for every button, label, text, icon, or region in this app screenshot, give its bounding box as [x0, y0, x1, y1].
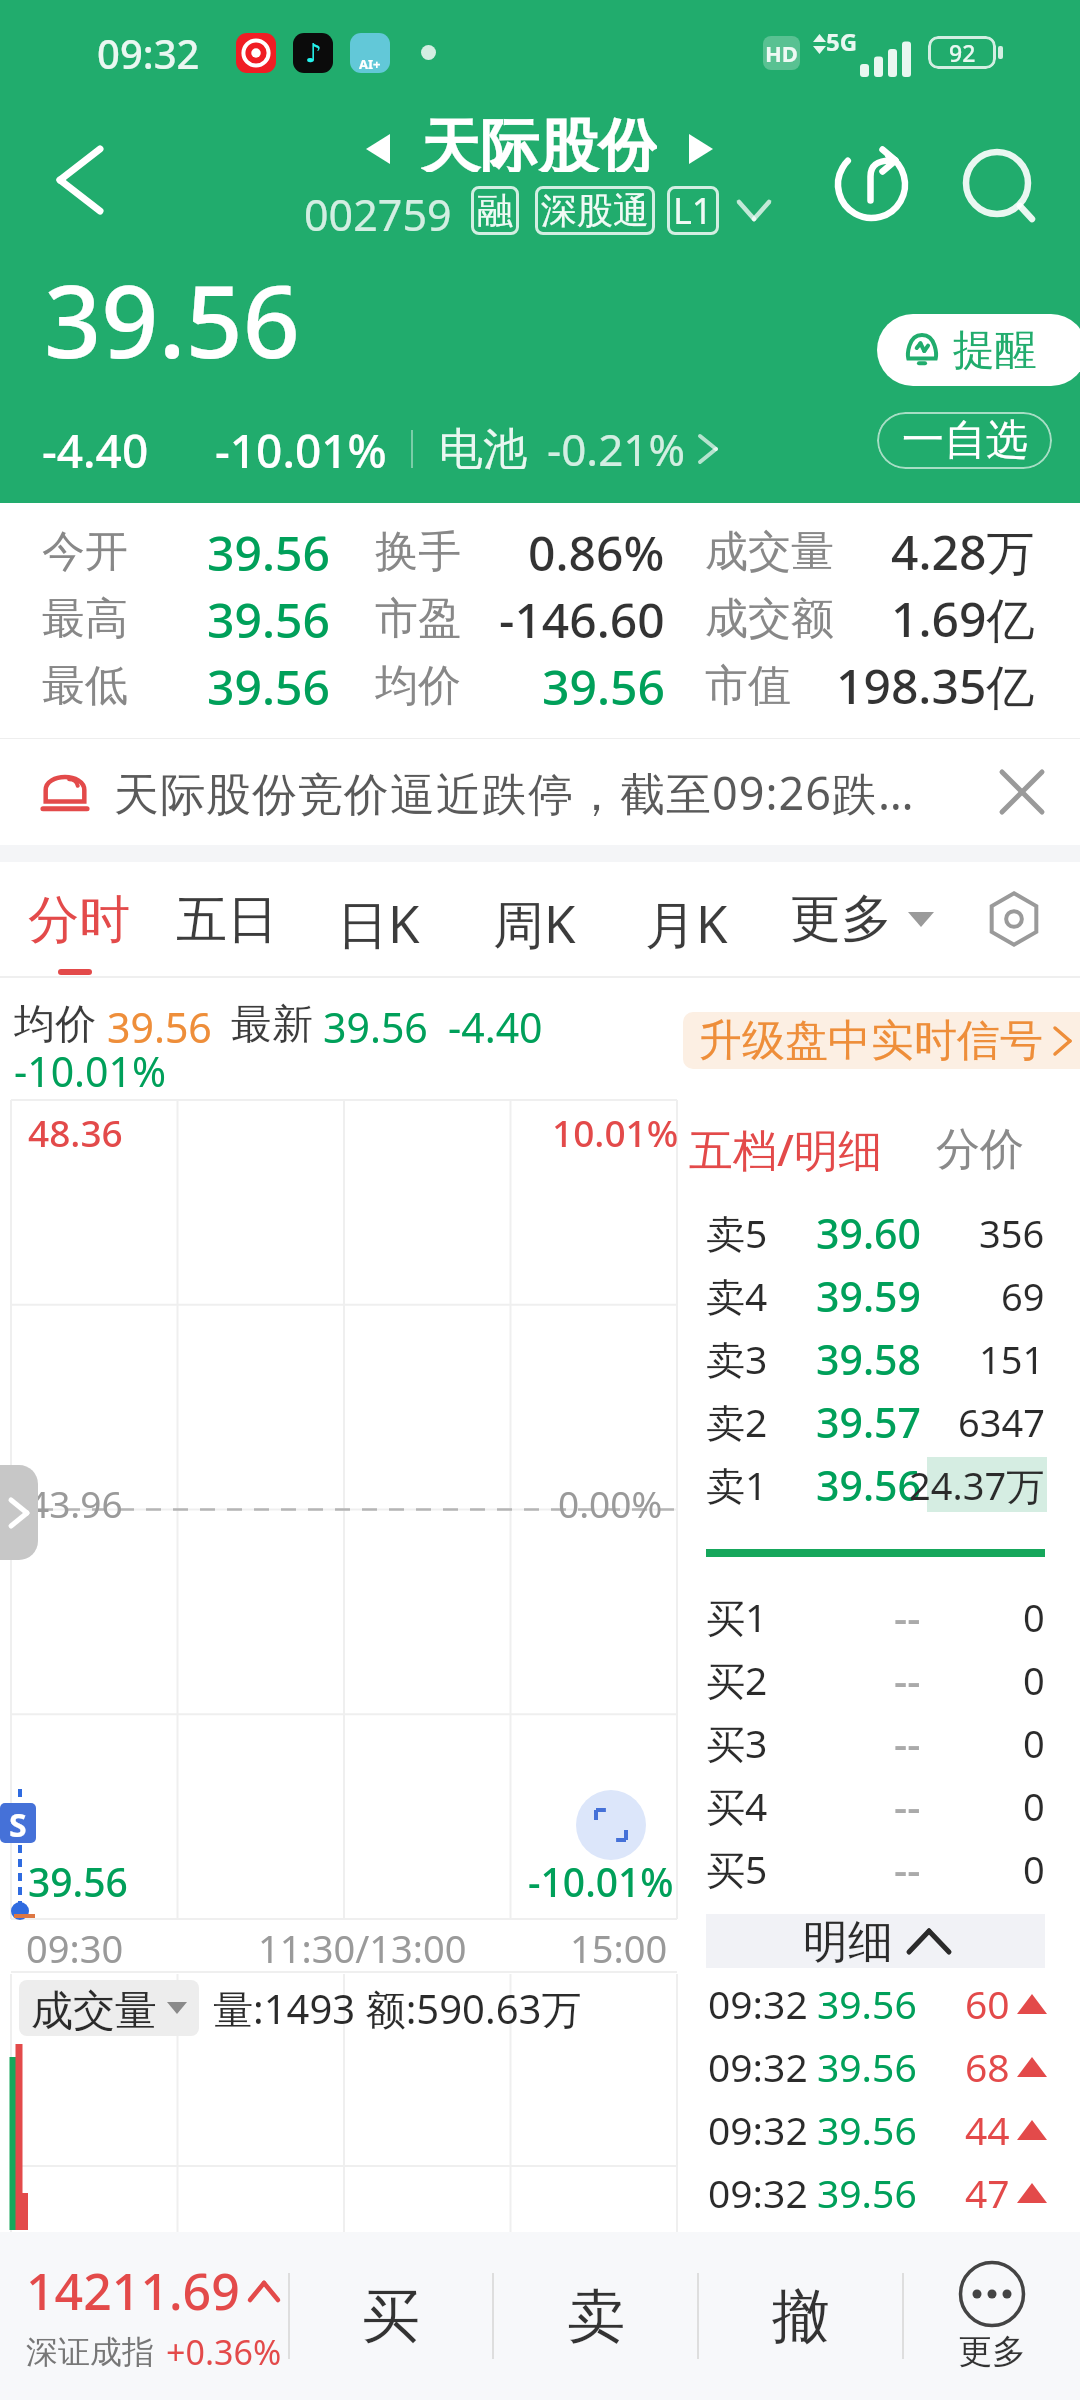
staticText: -10.01%	[14, 1043, 167, 1099]
staticText: 成交额	[705, 592, 834, 646]
staticText: 最低	[42, 659, 128, 713]
staticText: 更多	[790, 887, 892, 951]
button[interactable]: 周K	[467, 862, 619, 976]
staticText: 卖2	[706, 1395, 768, 1448]
staticText: 39.56	[107, 999, 212, 1043]
button[interactable]: 买5	[678, 1837, 1080, 1900]
button[interactable]: 09:32	[678, 1972, 1080, 2035]
staticText: 69	[1001, 1270, 1045, 1322]
staticText: 市盈	[375, 592, 461, 646]
staticText: 天际股份	[421, 110, 657, 172]
button[interactable]: 提醒	[877, 314, 1080, 386]
button[interactable]: 日K	[311, 862, 463, 976]
staticText: 五档/明细	[689, 1119, 882, 1179]
staticText: 4.28万	[891, 519, 1035, 585]
staticText: -0.21%	[547, 419, 686, 479]
staticText: 151	[979, 1333, 1045, 1385]
button[interactable]: 14211.69	[0, 2257, 288, 2375]
button[interactable]: 五日	[150, 862, 302, 976]
staticText: 分时	[28, 888, 130, 952]
staticText: 47	[965, 2166, 1010, 2219]
staticText: 39.59	[816, 1268, 921, 1324]
staticText: 09:32	[708, 2103, 808, 2156]
staticText: --	[894, 1715, 921, 1771]
staticText: 日K	[337, 888, 420, 958]
staticText: 成交量	[31, 1985, 157, 2031]
staticText: 39.56	[817, 1977, 917, 2030]
button[interactable]: 明细	[706, 1914, 1045, 1968]
button[interactable]: 分价	[936, 1119, 1024, 1179]
button[interactable]: Search	[962, 149, 1036, 223]
staticText: 升级盘中实时信号	[699, 1014, 1043, 1068]
button[interactable]: 五档/明细	[689, 1119, 882, 1179]
staticText: 均价	[375, 659, 461, 713]
button[interactable]: 09:32	[678, 2161, 1080, 2224]
button[interactable]: 卖	[494, 2232, 697, 2400]
staticText: -4.40	[42, 419, 149, 479]
button[interactable]: 买3	[678, 1711, 1080, 1774]
staticText: 换手	[375, 525, 461, 579]
button[interactable]: 卖1	[678, 1453, 1080, 1516]
button[interactable]: 09:32	[678, 2098, 1080, 2161]
staticText: HD	[765, 38, 798, 68]
staticText: 39.60	[816, 1205, 921, 1261]
staticText: AI+	[359, 55, 381, 73]
button[interactable]: 一自选	[877, 412, 1052, 469]
button[interactable]: 天际股份竞价逼近跌停，截至09:26跌…	[0, 739, 1080, 845]
button[interactable]: 撤	[699, 2232, 902, 2400]
button[interactable]: 卖4	[678, 1264, 1080, 1327]
button[interactable]: 买1	[678, 1585, 1080, 1648]
staticText: 0.00%	[558, 1478, 663, 1528]
staticText: 09:30	[26, 1922, 124, 1974]
staticText: 天际股份竞价逼近跌停，截至09:26跌…	[114, 762, 1002, 823]
staticText: --	[894, 1589, 921, 1645]
button[interactable]: 买4	[678, 1774, 1080, 1837]
staticText: 0.86%	[528, 520, 665, 585]
staticText: 量:1493 额:590.63万	[213, 1981, 582, 2036]
button[interactable]: 卖3	[678, 1327, 1080, 1390]
staticText: 002759	[304, 185, 452, 235]
staticText: 198.35亿	[836, 653, 1035, 719]
staticText: 明细	[803, 1914, 893, 1968]
staticText: 买5	[706, 1842, 768, 1895]
button[interactable]: 买	[290, 2232, 492, 2400]
staticText: 卖5	[706, 1206, 768, 1259]
staticText: 电池	[439, 422, 527, 477]
staticText: 0	[1023, 1654, 1045, 1706]
button[interactable]: 分时	[2, 862, 154, 976]
button[interactable]: Close	[1002, 772, 1042, 812]
button[interactable]: Expand panel	[0, 1465, 38, 1560]
button[interactable]: Refresh	[836, 149, 906, 219]
button[interactable]: 买2	[678, 1648, 1080, 1711]
button[interactable]: 更多	[904, 2232, 1080, 2400]
button[interactable]: Fullscreen chart	[576, 1790, 646, 1860]
button[interactable]: Back	[58, 149, 100, 211]
staticText: --	[894, 1652, 921, 1708]
button[interactable]: 更多	[768, 862, 956, 976]
staticText: 买4	[706, 1779, 768, 1832]
staticText: 10.01%	[552, 1107, 679, 1157]
button[interactable]: 升级盘中实时信号	[683, 1012, 1080, 1069]
button[interactable]: 月K	[619, 862, 771, 976]
staticText: 0	[1023, 1717, 1045, 1769]
staticText: 最高	[42, 592, 128, 646]
staticText: 39.56	[542, 654, 665, 719]
staticText: 5G	[826, 25, 858, 58]
staticText: 撤	[772, 2280, 830, 2353]
button[interactable]: Chart settings	[986, 891, 1042, 947]
staticText: 6347	[958, 1396, 1045, 1448]
staticText: 09:32	[97, 26, 200, 80]
staticText: 39.56	[816, 1457, 921, 1513]
staticText: 月K	[645, 888, 728, 958]
staticText: 卖4	[706, 1269, 768, 1322]
button[interactable]: 卖5	[678, 1201, 1080, 1264]
staticText: 39.56	[207, 654, 330, 719]
staticText: 市值	[705, 659, 791, 713]
button[interactable]: 卖2	[678, 1390, 1080, 1453]
staticText: 39.56	[44, 251, 300, 387]
button[interactable]: 成交量	[19, 1980, 199, 2036]
staticText: 39.57	[816, 1394, 921, 1450]
staticText: 分价	[936, 1122, 1024, 1177]
button[interactable]: 09:32	[678, 2035, 1080, 2098]
staticText: 48.36	[28, 1107, 123, 1157]
